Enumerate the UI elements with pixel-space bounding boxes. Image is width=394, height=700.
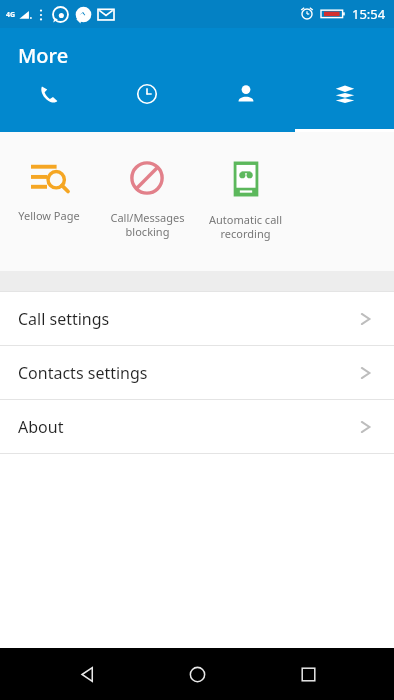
- button[interactable]: Back: [63, 650, 111, 698]
- button[interactable]: Call/Messages blocking: [98, 132, 196, 239]
- button[interactable]: Calls: [0, 83, 98, 105]
- staticText: Call/Messages blocking: [110, 210, 185, 239]
- staticText: Yellow Page: [18, 208, 80, 223]
- button[interactable]: Contacts: [196, 83, 295, 105]
- staticText: Automatic call recording: [209, 212, 282, 241]
- staticText: Call settings: [18, 308, 110, 330]
- staticText: 15:54: [352, 5, 386, 23]
- staticText: 4G: [6, 10, 16, 20]
- staticText: More: [18, 42, 69, 69]
- button[interactable]: Recents: [98, 83, 196, 105]
- button[interactable]: More: [295, 83, 394, 105]
- button[interactable]: Call settings: [0, 292, 394, 345]
- staticText: About: [18, 416, 64, 438]
- staticText: Contacts settings: [18, 362, 148, 384]
- button[interactable]: Contacts settings: [0, 346, 394, 399]
- button[interactable]: About: [0, 400, 394, 453]
- button[interactable]: Home: [173, 650, 221, 698]
- button[interactable]: Recents: [284, 650, 332, 698]
- button[interactable]: Automatic call recording: [196, 132, 295, 241]
- button[interactable]: Yellow Page: [0, 132, 98, 223]
